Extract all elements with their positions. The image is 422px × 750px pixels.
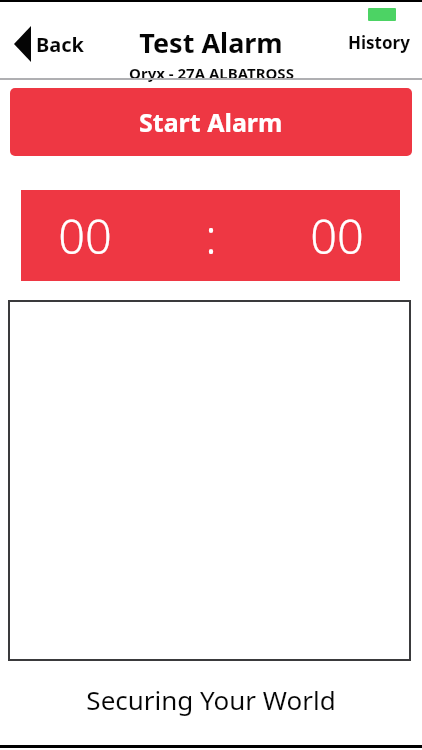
staticText: 00 [58,204,112,268]
staticText: History [348,31,410,54]
staticText: Test Alarm [139,24,283,61]
button[interactable]: Start Alarm [10,88,412,156]
staticText: : [205,204,217,268]
staticText: 00 [310,204,364,268]
staticText: Securing Your World [86,682,336,717]
staticText: Oryx - 27A ALBATROSS [129,63,294,83]
staticText: Start Alarm [139,105,283,139]
staticText: Back [36,31,84,58]
button[interactable]: History [336,23,422,62]
button[interactable]: Back [0,20,96,68]
